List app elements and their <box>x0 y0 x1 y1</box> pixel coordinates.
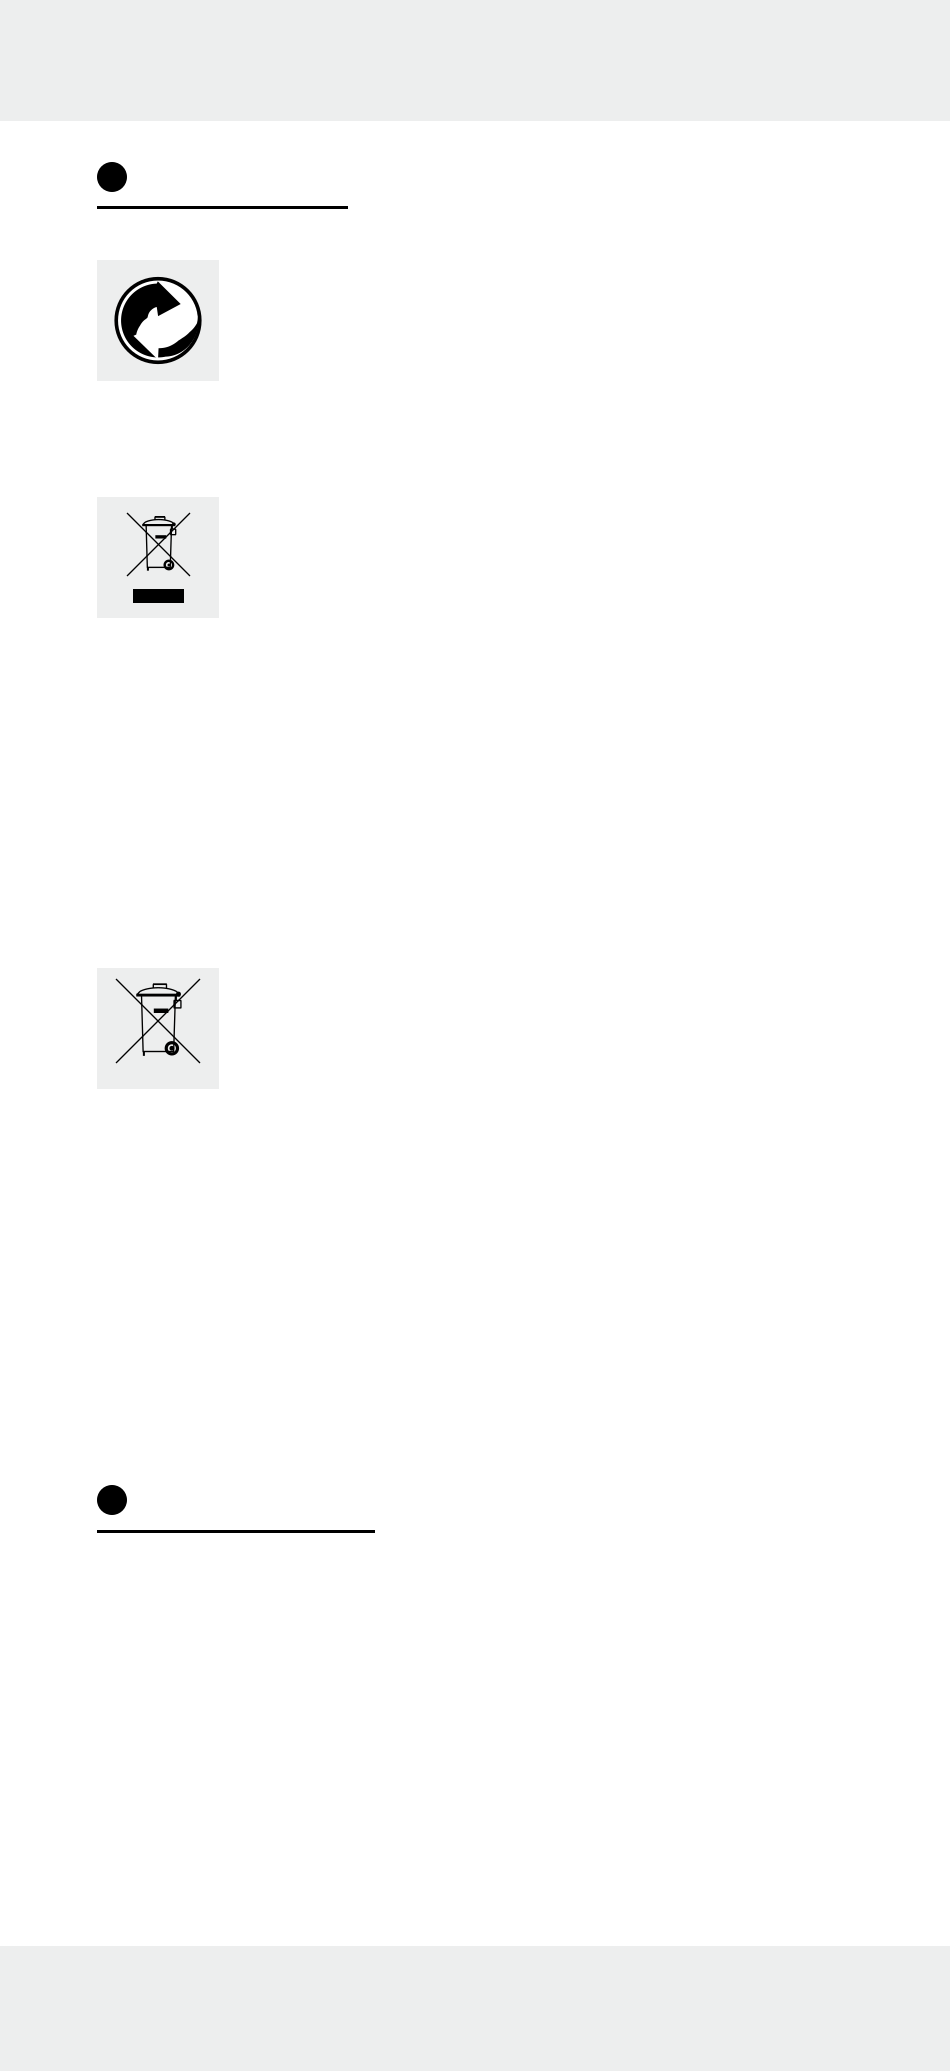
button[interactable]: Section heading <box>97 1485 375 1533</box>
button[interactable]: Section heading <box>97 162 348 209</box>
